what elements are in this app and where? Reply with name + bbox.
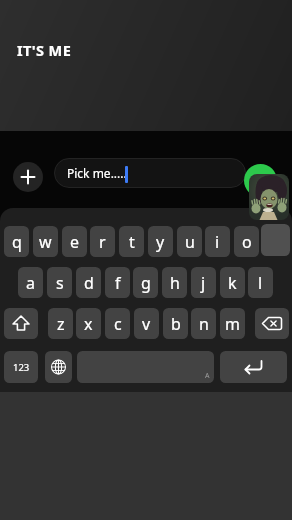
- staticText: z: [57, 313, 65, 335]
- staticText: e: [70, 231, 80, 253]
- button[interactable]: h: [162, 267, 187, 298]
- button[interactable]: w: [33, 226, 58, 257]
- button[interactable]: i: [205, 226, 230, 257]
- staticText: A: [205, 371, 210, 381]
- staticText: u: [185, 231, 195, 253]
- button[interactable]: c: [105, 308, 130, 339]
- button[interactable]: g: [133, 267, 158, 298]
- button[interactable]: k: [220, 267, 245, 298]
- staticText: d: [84, 272, 94, 294]
- button[interactable]: o: [234, 226, 259, 257]
- button[interactable]: [13, 162, 43, 192]
- staticText: IT'S ME: [17, 40, 72, 60]
- staticText: b: [171, 313, 181, 335]
- staticText: y: [156, 231, 165, 253]
- staticText: n: [199, 313, 209, 335]
- staticText: s: [56, 272, 64, 294]
- staticText: c: [114, 313, 122, 335]
- staticText: o: [242, 231, 252, 253]
- button[interactable]: u: [177, 226, 202, 257]
- button[interactable]: z: [48, 308, 73, 339]
- button[interactable]: d: [76, 267, 101, 298]
- staticText: 123: [13, 361, 30, 374]
- staticText: v: [142, 313, 151, 335]
- button[interactable]: b: [163, 308, 188, 339]
- button[interactable]: l: [248, 267, 273, 298]
- button[interactable]: x: [76, 308, 101, 339]
- button[interactable]: s: [47, 267, 72, 298]
- staticText: k: [228, 272, 237, 294]
- button[interactable]: n: [191, 308, 216, 339]
- button[interactable]: v: [134, 308, 159, 339]
- button[interactable]: a: [18, 267, 43, 298]
- button[interactable]: e: [62, 226, 87, 257]
- staticText: Pick me.....: [67, 165, 127, 181]
- staticText: m: [225, 313, 240, 335]
- staticText: w: [39, 231, 52, 253]
- button[interactable]: j: [191, 267, 216, 298]
- button[interactable]: [255, 308, 289, 339]
- button[interactable]: [220, 351, 287, 383]
- staticText: t: [129, 231, 135, 253]
- staticText: j: [201, 272, 206, 294]
- staticText: x: [84, 313, 93, 335]
- button[interactable]: m: [220, 308, 245, 339]
- button[interactable]: q: [4, 226, 29, 257]
- button[interactable]: A: [77, 351, 214, 383]
- button[interactable]: Pick me.....: [54, 158, 246, 188]
- staticText: h: [170, 272, 180, 294]
- button[interactable]: r: [90, 226, 115, 257]
- button[interactable]: [4, 308, 38, 339]
- button[interactable]: y: [148, 226, 173, 257]
- button[interactable]: t: [119, 226, 144, 257]
- staticText: i: [215, 231, 220, 253]
- staticText: f: [115, 272, 121, 294]
- staticText: r: [99, 231, 106, 253]
- button[interactable]: 123: [4, 351, 38, 383]
- staticText: l: [258, 272, 263, 294]
- button[interactable]: f: [105, 267, 130, 298]
- staticText: g: [141, 272, 151, 294]
- staticText: a: [26, 272, 35, 294]
- staticText: q: [12, 231, 22, 253]
- button[interactable]: [45, 351, 72, 383]
